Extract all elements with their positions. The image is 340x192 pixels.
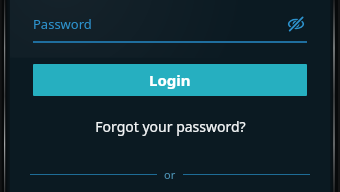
staticText: Login [149,70,191,90]
button[interactable]: Login [33,64,307,96]
button[interactable]: Forgot your password? [0,112,340,140]
staticText: Password [33,15,92,33]
button[interactable]: Show password [285,13,307,35]
staticText: Forgot your password? [95,117,246,136]
staticText: or [164,167,176,182]
